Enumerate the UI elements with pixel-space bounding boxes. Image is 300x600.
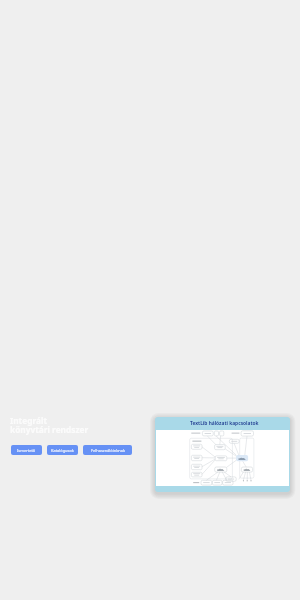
button[interactable]: Katalógusok — [47, 445, 78, 455]
staticText: Katalógusok — [51, 448, 74, 453]
staticText: Integrált könyvtári rendszer — [10, 415, 89, 436]
button[interactable]: Ismertető — [11, 445, 42, 455]
staticText: Felhasználóinknak — [91, 448, 125, 453]
button[interactable]: Felhasználóinknak — [83, 445, 132, 455]
staticText: TextLib hálózati kapcsolatok — [190, 420, 259, 427]
button[interactable]: TextLib hálózati kapcsolatok — [155, 417, 290, 492]
other: TextLib hálózati kapcsolatok ábra — [156, 430, 289, 486]
staticText: Ismertető — [17, 448, 36, 453]
